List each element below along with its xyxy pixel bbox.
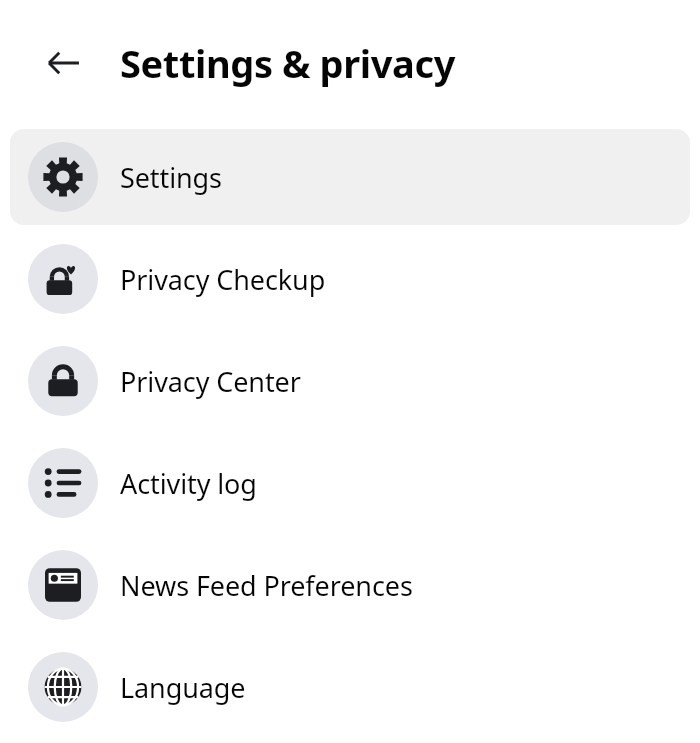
- staticText: Activity log: [120, 465, 257, 502]
- staticText: Language: [120, 669, 246, 706]
- button[interactable]: Back: [40, 39, 88, 87]
- button[interactable]: News Feed Preferences: [10, 537, 690, 633]
- button[interactable]: Privacy Center: [10, 333, 690, 429]
- staticText: Settings & privacy: [120, 37, 455, 89]
- button[interactable]: Settings: [10, 129, 690, 225]
- button[interactable]: Privacy Checkup: [10, 231, 690, 327]
- button[interactable]: Activity log: [10, 435, 690, 531]
- staticText: Privacy Center: [120, 363, 301, 400]
- staticText: News Feed Preferences: [120, 567, 413, 604]
- staticText: Privacy Checkup: [120, 261, 326, 298]
- button[interactable]: Language: [10, 639, 690, 735]
- staticText: Settings: [120, 159, 222, 196]
